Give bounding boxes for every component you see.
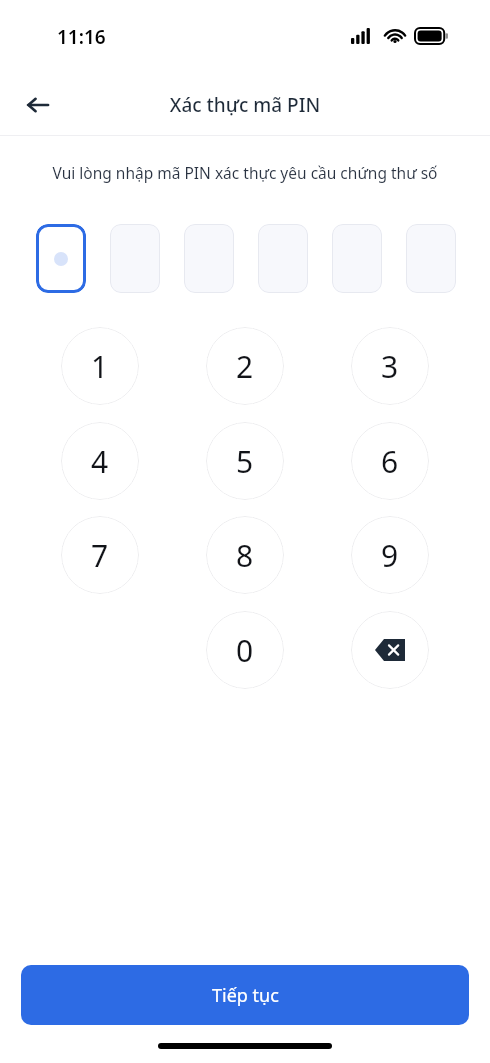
button[interactable]: Tiếp tục bbox=[21, 965, 469, 1025]
staticText: 11:16 bbox=[57, 24, 106, 50]
button[interactable]: Back bbox=[14, 81, 62, 129]
button[interactable]: 2 bbox=[206, 327, 284, 405]
staticText: 3 bbox=[381, 346, 399, 387]
staticText: Tiếp tục bbox=[212, 983, 279, 1008]
staticText: 1 bbox=[91, 346, 109, 387]
button[interactable]: 1 bbox=[61, 327, 139, 405]
button[interactable]: PIN digit 3 bbox=[184, 224, 234, 293]
button[interactable]: Delete bbox=[351, 611, 429, 689]
staticText: 6 bbox=[381, 441, 399, 482]
staticText: 5 bbox=[236, 441, 254, 482]
staticText: 8 bbox=[236, 535, 254, 576]
button[interactable]: PIN digit 6 bbox=[406, 224, 456, 293]
staticText: Vui lòng nhập mã PIN xác thực yêu cầu ch… bbox=[48, 162, 442, 183]
button[interactable]: 3 bbox=[351, 327, 429, 405]
staticText: 9 bbox=[381, 535, 399, 576]
button[interactable]: PIN digit 1 bbox=[36, 224, 86, 293]
button[interactable]: 8 bbox=[206, 516, 284, 594]
button[interactable]: PIN digit 2 bbox=[110, 224, 160, 293]
staticText: Xác thực mã PIN bbox=[0, 92, 490, 118]
button[interactable]: PIN digit 4 bbox=[258, 224, 308, 293]
button[interactable]: 9 bbox=[351, 516, 429, 594]
button[interactable]: 5 bbox=[206, 422, 284, 500]
staticText: 2 bbox=[236, 346, 254, 387]
staticText: 0 bbox=[236, 630, 254, 671]
button[interactable]: 4 bbox=[61, 422, 139, 500]
button[interactable]: 0 bbox=[206, 611, 284, 689]
staticText: 4 bbox=[91, 441, 109, 482]
button[interactable]: PIN digit 5 bbox=[332, 224, 382, 293]
button[interactable]: 6 bbox=[351, 422, 429, 500]
button[interactable]: 7 bbox=[61, 516, 139, 594]
staticText: 7 bbox=[91, 535, 109, 576]
